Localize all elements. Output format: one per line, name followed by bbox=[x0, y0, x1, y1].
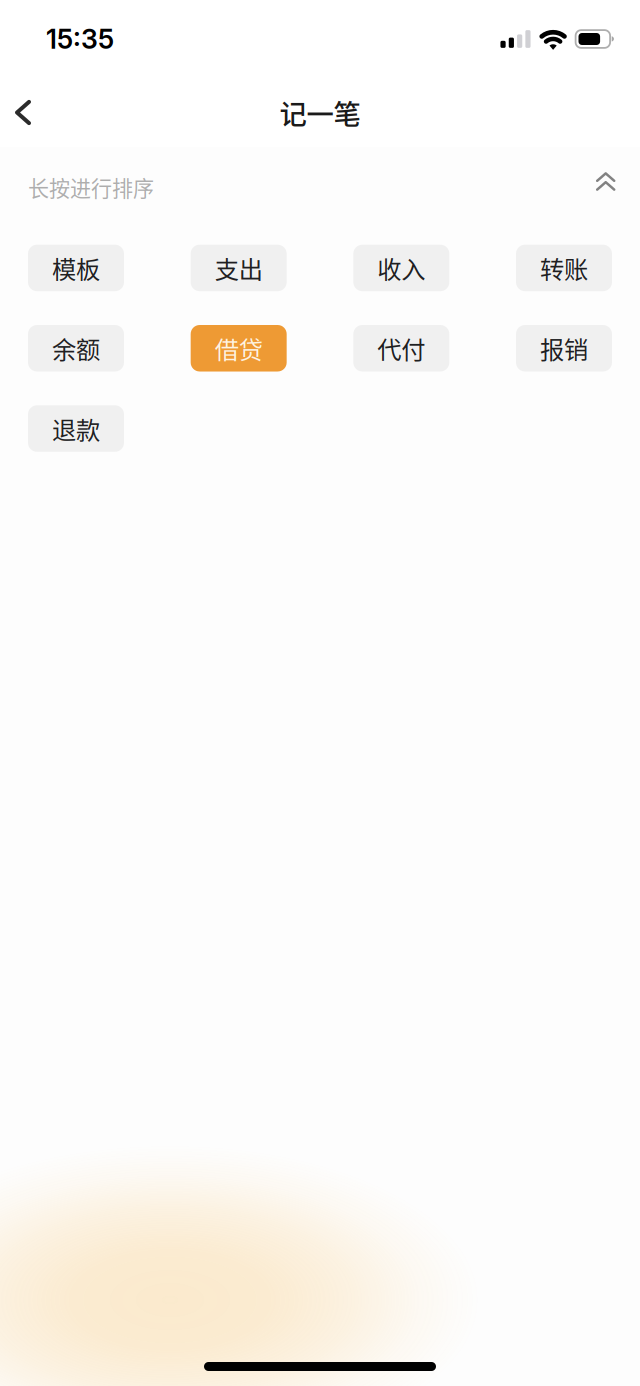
button[interactable]: 代付 bbox=[353, 325, 449, 371]
button[interactable]: 退款 bbox=[28, 405, 124, 452]
staticText: 余额 bbox=[52, 331, 100, 366]
staticText: 收入 bbox=[377, 250, 425, 285]
staticText: 借贷 bbox=[215, 331, 263, 366]
staticText: 转账 bbox=[540, 250, 588, 285]
staticText: 代付 bbox=[377, 331, 425, 366]
button[interactable]: 支出 bbox=[191, 245, 287, 291]
button[interactable]: 报销 bbox=[516, 325, 612, 371]
button[interactable]: 模板 bbox=[28, 245, 124, 291]
staticText: 记一笔 bbox=[279, 93, 360, 132]
staticText: 退款 bbox=[52, 411, 100, 446]
button[interactable]: 借贷 bbox=[191, 325, 287, 371]
staticText: 15:35 bbox=[46, 23, 114, 55]
button[interactable]: 返回 bbox=[0, 84, 47, 140]
button[interactable]: 转账 bbox=[516, 245, 612, 291]
staticText: 支出 bbox=[215, 250, 263, 285]
staticText: 模板 bbox=[52, 250, 100, 285]
staticText: 报销 bbox=[540, 331, 588, 366]
button[interactable]: 余额 bbox=[28, 325, 124, 371]
button[interactable]: 收入 bbox=[353, 245, 449, 291]
button[interactable]: 收起 bbox=[584, 159, 628, 203]
staticText: 长按进行排序 bbox=[28, 172, 154, 202]
